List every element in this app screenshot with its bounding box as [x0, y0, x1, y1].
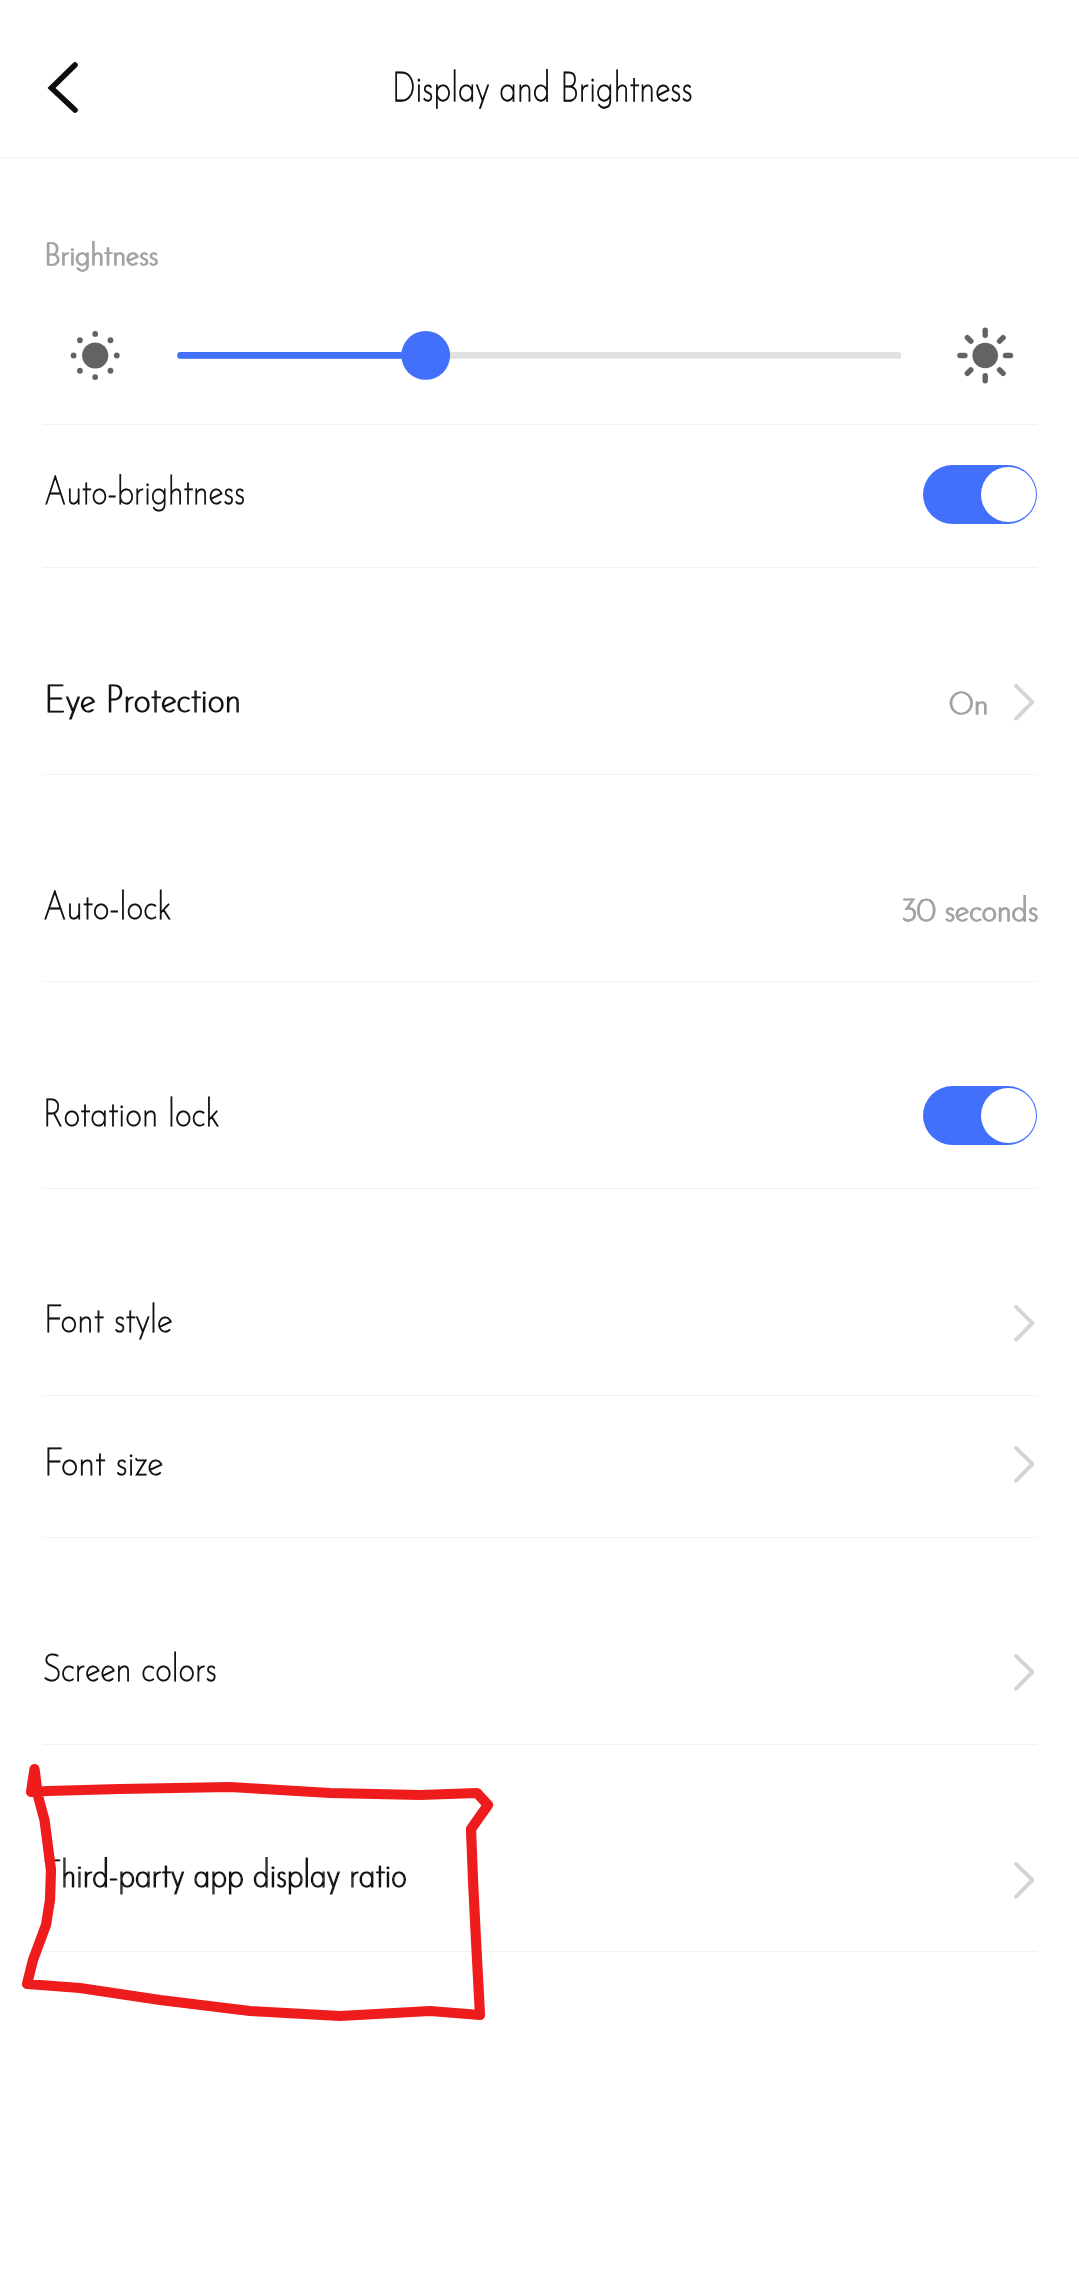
- button[interactable]: Toggle switch: [923, 465, 1037, 524]
- button[interactable]: [0, 640, 1079, 774]
- staticText: Rotation lock: [43, 1098, 220, 1136]
- button[interactable]: [0, 1603, 1079, 1744]
- staticText: Eye Protection: [45, 684, 242, 722]
- staticText: Font style: [44, 1304, 173, 1342]
- staticText: Auto-brightness: [44, 476, 246, 514]
- staticText: Rotation lock: [43, 1098, 220, 1136]
- button[interactable]: [0, 424, 1079, 567]
- button[interactable]: [0, 1254, 1079, 1395]
- staticText: Font style: [44, 1304, 173, 1342]
- staticText: Screen colors: [43, 1653, 217, 1691]
- button[interactable]: Toggle switch: [923, 1086, 1037, 1145]
- staticText: Third-party app display ratio: [44, 1859, 408, 1897]
- button[interactable]: [0, 1053, 1079, 1188]
- staticText: Brightness: [45, 242, 159, 273]
- staticText: Font size: [44, 1447, 164, 1485]
- staticText: Auto-lock: [43, 891, 171, 929]
- staticText: 30 seconds: [901, 896, 1038, 929]
- staticText: Display and Brightness: [392, 71, 693, 111]
- staticText: 30 seconds: [902, 896, 1039, 929]
- staticText: Third-party app display ratio: [43, 1859, 407, 1897]
- button[interactable]: Back: [28, 51, 100, 123]
- button[interactable]: [0, 1810, 1079, 1951]
- staticText: On: [948, 691, 989, 722]
- staticText: Display and Brightness: [392, 71, 693, 111]
- button[interactable]: Brightness slider: [176, 325, 903, 385]
- staticText: On: [949, 691, 990, 722]
- staticText: Screen colors: [43, 1653, 217, 1691]
- staticText: Auto-brightness: [44, 476, 246, 514]
- staticText: Auto-lock: [43, 891, 171, 929]
- staticText: Font size: [44, 1447, 164, 1485]
- button[interactable]: [0, 1395, 1079, 1537]
- button[interactable]: Lower brightness: [63, 324, 127, 388]
- staticText: Eye Protection: [44, 684, 241, 722]
- staticText: Brightness: [44, 242, 158, 273]
- button[interactable]: Raise brightness: [949, 320, 1021, 392]
- button[interactable]: [0, 846, 1079, 981]
